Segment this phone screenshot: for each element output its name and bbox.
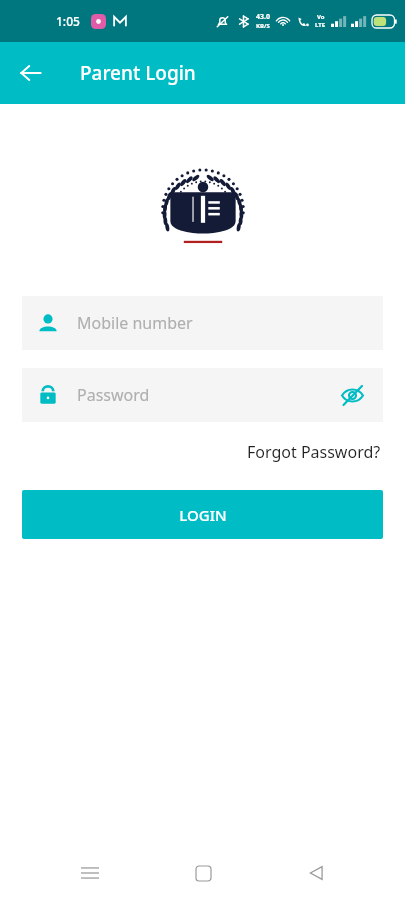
staticText: 1:05: [56, 13, 80, 29]
staticText: Parent Login: [80, 60, 196, 86]
staticText: Password: [77, 384, 150, 406]
staticText: KB/S: [256, 22, 270, 30]
button[interactable]: Recent apps: [66, 849, 114, 897]
staticText: LTE: [315, 21, 326, 29]
button[interactable]: Home: [179, 849, 227, 897]
button[interactable]: Mobile number: [22, 296, 383, 350]
staticText: Forgot Password?: [247, 441, 381, 463]
staticText: 43.0: [256, 12, 270, 22]
button[interactable]: Forgot Password?: [245, 438, 383, 466]
button[interactable]: LOGIN: [22, 490, 383, 539]
staticText: LOGIN: [179, 505, 227, 525]
staticText: Mobile number: [77, 312, 193, 334]
button[interactable]: Show password: [335, 378, 369, 412]
button[interactable]: Back: [292, 849, 340, 897]
button[interactable]: Password: [22, 368, 383, 422]
staticText: Vo: [317, 13, 325, 21]
button[interactable]: Back: [10, 52, 52, 94]
